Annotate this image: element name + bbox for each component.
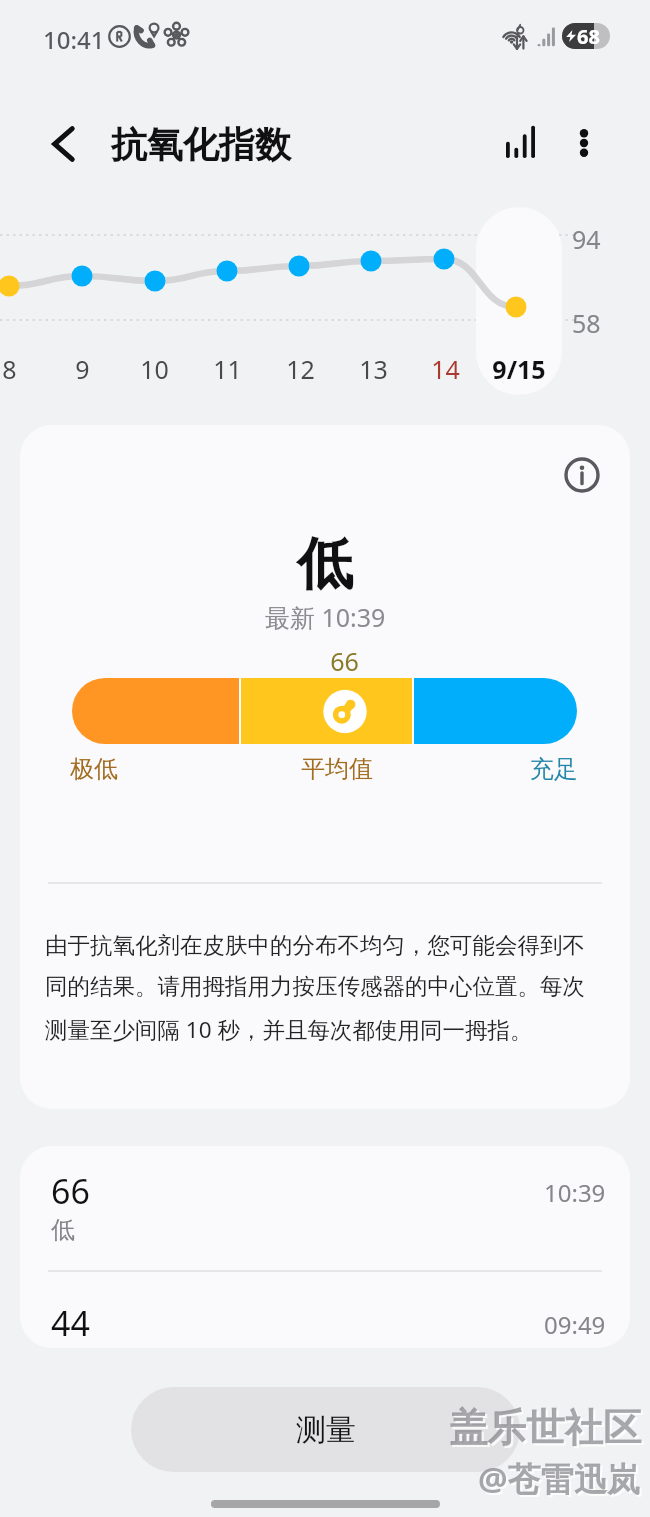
- button[interactable]: 测量: [131, 1387, 520, 1472]
- staticText: 58: [572, 306, 601, 340]
- staticText: 11: [213, 352, 242, 386]
- staticText: 68: [577, 23, 600, 49]
- staticText: 66: [51, 1168, 90, 1214]
- staticText: 13: [359, 352, 388, 386]
- staticText: 9: [75, 352, 90, 386]
- button[interactable]: Back: [30, 111, 96, 177]
- staticText: 最新 10:39: [265, 600, 386, 634]
- button[interactable]: Info: [552, 445, 612, 505]
- button[interactable]: More options: [551, 110, 617, 176]
- staticText: 测量: [296, 1411, 356, 1449]
- staticText: 10:39: [544, 1176, 606, 1209]
- staticText: 12: [286, 352, 315, 386]
- staticText: 14: [431, 352, 460, 386]
- staticText: 抗氧化指数: [111, 122, 291, 167]
- staticText: 94: [572, 222, 601, 256]
- staticText: @苍雷迅岚: [480, 1458, 642, 1503]
- staticText: 09:49: [544, 1308, 606, 1341]
- staticText: 低: [297, 529, 353, 600]
- staticText: 44: [51, 1300, 90, 1346]
- staticText: 盖乐世社区: [449, 1404, 642, 1453]
- staticText: 由于抗氧化剂在皮肤中的分布不均匀，您可能会得到不同的结果。请用拇指用力按压传感器…: [45, 931, 590, 1044]
- staticText: @苍雷迅岚: [478, 1456, 640, 1501]
- button[interactable]: 44: [20, 1272, 630, 1348]
- staticText: 66: [330, 644, 359, 676]
- staticText: 充足: [530, 754, 578, 784]
- staticText: 8: [2, 352, 17, 386]
- staticText: 低: [51, 1215, 75, 1245]
- staticText: 9/15: [492, 352, 546, 386]
- staticText: 极低: [70, 754, 118, 784]
- staticText: 10: [140, 352, 169, 386]
- button[interactable]: 66: [20, 1146, 630, 1270]
- staticText: 10:41: [43, 23, 105, 56]
- staticText: 盖乐世社区: [451, 1406, 644, 1455]
- staticText: 平均值: [301, 754, 373, 784]
- button[interactable]: Statistics: [487, 108, 553, 174]
